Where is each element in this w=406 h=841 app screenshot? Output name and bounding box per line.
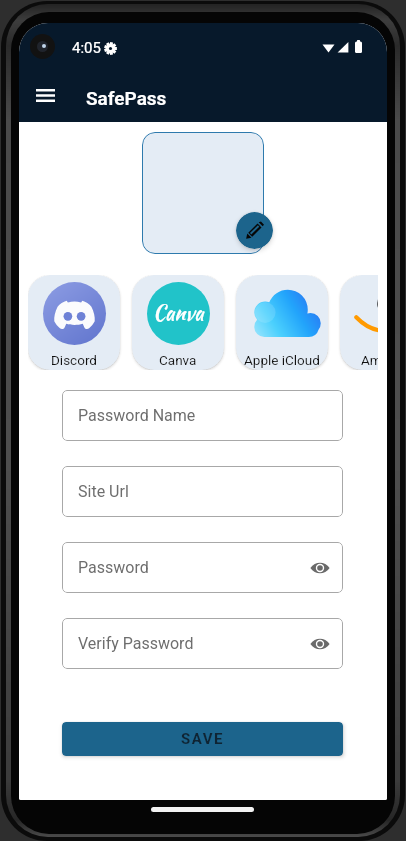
button[interactable]: Logo preview [142,132,264,254]
button[interactable]: Edit logo [236,212,273,249]
button[interactable]: SAVE [62,722,343,756]
button[interactable]: Show password [307,555,333,581]
button[interactable]: Verify Password [62,618,343,669]
staticText: Amazon [361,352,378,368]
staticText: SafePass [86,87,167,109]
button[interactable]: Open navigation menu [25,75,65,115]
button[interactable]: Show password [307,631,333,657]
button[interactable]: Site Url [62,466,343,517]
staticText: Canva [159,352,197,368]
staticText: Verify Password [78,634,194,653]
button[interactable]: Password [62,542,343,593]
button[interactable]: Amazon [340,275,378,370]
button[interactable]: Canva [132,275,224,370]
button[interactable]: Apple iCloud [236,275,328,370]
button[interactable]: Password Name [62,390,343,441]
staticText: Canva [153,298,204,327]
staticText: Password [78,558,149,577]
staticText: Password Name [78,406,196,425]
staticText: Site Url [78,482,129,501]
staticText: 4:05 [72,39,101,57]
staticText: Discord [51,352,97,368]
staticText: Apple iCloud [244,352,320,368]
button[interactable]: Discord [28,275,120,370]
staticText: SAVE [181,730,224,748]
